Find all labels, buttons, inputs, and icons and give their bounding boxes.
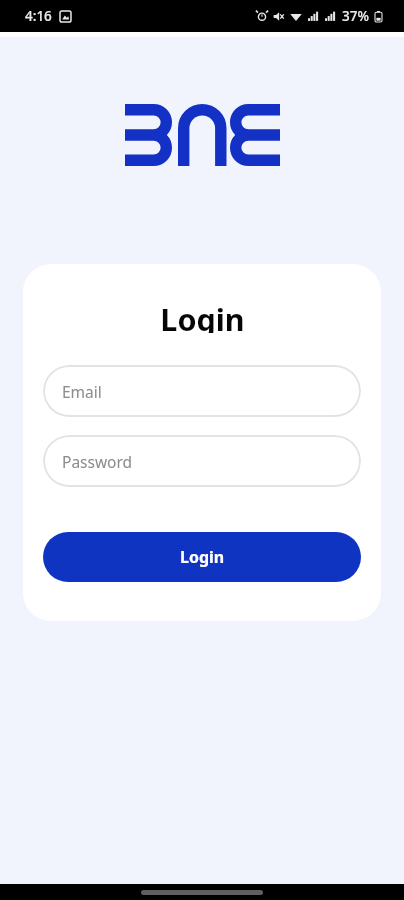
button[interactable]: Password — [43, 435, 361, 487]
staticText: Login — [180, 546, 225, 568]
staticText: Password — [62, 451, 133, 472]
staticText: Login — [160, 298, 245, 333]
staticText: 37% — [342, 7, 369, 25]
button[interactable]: Email — [43, 365, 361, 417]
staticText: Email — [62, 381, 102, 402]
button[interactable]: Login — [43, 532, 361, 582]
staticText: 4:16 — [25, 7, 52, 25]
